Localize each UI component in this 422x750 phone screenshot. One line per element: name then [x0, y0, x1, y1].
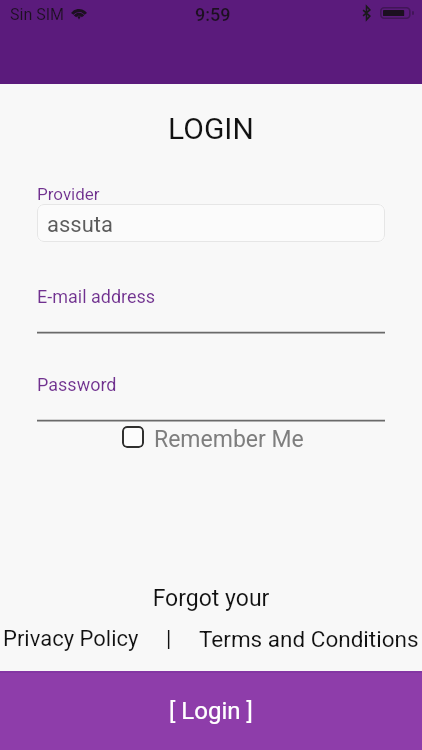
- button[interactable]: [ Login ]: [0, 671, 422, 750]
- staticText: E-mail address: [37, 286, 156, 307]
- staticText: Password: [37, 374, 117, 395]
- staticText: assuta: [47, 212, 113, 238]
- staticText: 9:59: [195, 4, 231, 25]
- staticText: LOGIN: [0, 111, 422, 146]
- button[interactable]: Terms and Conditions: [199, 626, 419, 652]
- button[interactable]: Forgot your password?: [96, 585, 326, 613]
- button[interactable]: Remember Me: [120, 424, 306, 450]
- staticText: Sin SIM: [10, 5, 65, 24]
- button[interactable]: Privacy Policy: [3, 626, 139, 652]
- staticText: Provider: [37, 184, 100, 204]
- staticText: [ Login ]: [169, 697, 253, 725]
- staticText: Forgot your password?: [96, 585, 326, 613]
- button[interactable]: assuta: [37, 204, 385, 242]
- staticText: Remember Me: [154, 426, 304, 452]
- staticText: |: [166, 626, 172, 652]
